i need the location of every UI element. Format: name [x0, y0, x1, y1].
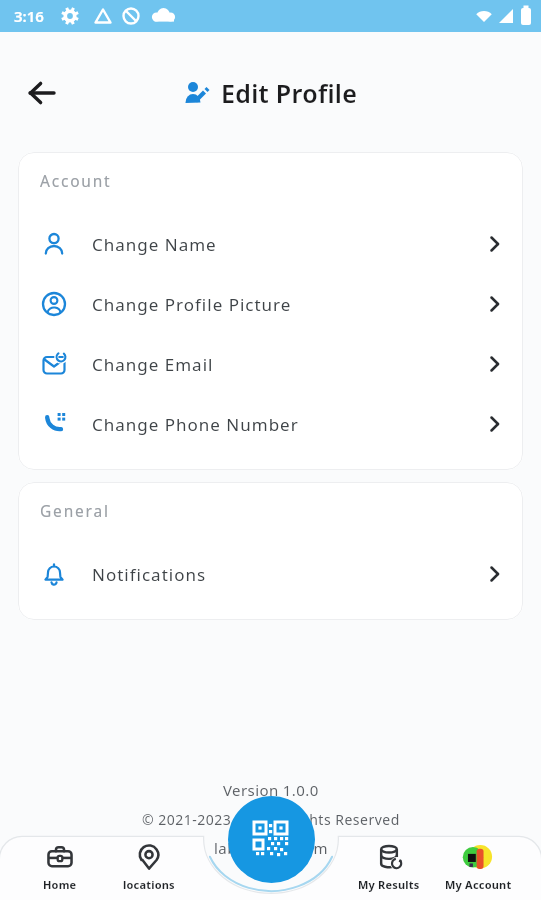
button[interactable]: My Results: [344, 842, 434, 892]
staticText: Account: [40, 170, 112, 191]
staticText: Change Profile Picture: [92, 293, 292, 316]
staticText: My Results: [358, 877, 420, 892]
staticText: © 2021-2023 Lab All Rights Reserved: [142, 810, 400, 829]
button[interactable]: locations: [104, 842, 194, 892]
button[interactable]: Change Name: [40, 214, 503, 274]
button[interactable]: Change Profile Picture: [40, 274, 503, 334]
button[interactable]: [24, 75, 60, 111]
button[interactable]: Change Phone Number: [40, 394, 503, 454]
staticText: Change Phone Number: [92, 413, 299, 436]
button[interactable]: Change Email: [40, 334, 503, 394]
staticText: Edit Profile: [221, 76, 358, 110]
staticText: Change Email: [92, 353, 214, 376]
staticText: laboratory.com: [214, 838, 328, 858]
staticText: locations: [123, 877, 175, 892]
staticText: General: [40, 500, 110, 521]
staticText: Change Name: [92, 233, 217, 256]
staticText: Home: [43, 877, 77, 892]
button[interactable]: Notifications: [40, 544, 503, 604]
staticText: Version 1.0.0: [223, 780, 319, 800]
staticText: Notifications: [92, 563, 207, 586]
staticText: 3:16: [14, 6, 44, 26]
button[interactable]: My Account: [433, 842, 523, 892]
button[interactable]: Home: [15, 842, 105, 892]
button[interactable]: [228, 796, 315, 883]
staticText: My Account: [445, 877, 512, 892]
